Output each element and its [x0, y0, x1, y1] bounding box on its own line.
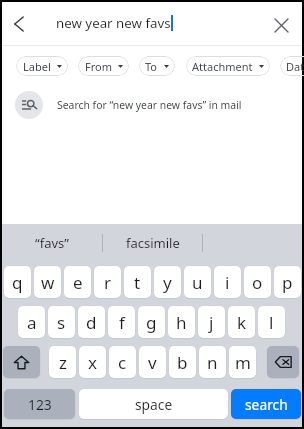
button[interactable]: Backspace — [267, 346, 299, 378]
button[interactable]: facsimile — [103, 224, 202, 262]
staticText: u — [192, 271, 203, 294]
staticText: v — [148, 351, 157, 374]
staticText: m — [235, 351, 251, 374]
staticText: o — [252, 271, 263, 294]
staticText: Attachment — [192, 59, 253, 74]
staticText: c — [118, 351, 127, 374]
staticText: y — [163, 271, 172, 294]
button[interactable]: From — [78, 56, 129, 76]
staticText: 123 — [28, 395, 52, 414]
button[interactable]: o — [244, 266, 271, 298]
button[interactable]: search — [231, 389, 301, 419]
button[interactable]: Shift — [3, 346, 40, 378]
button[interactable]: q — [4, 266, 31, 298]
staticText: facsimile — [126, 234, 180, 252]
button[interactable]: Back — [7, 12, 31, 36]
staticText: f — [119, 311, 125, 334]
button[interactable]: z — [49, 346, 76, 378]
button[interactable]: s — [48, 306, 75, 338]
button[interactable]: Date — [280, 56, 304, 76]
staticText: t — [134, 271, 141, 294]
staticText: new year new favs — [56, 14, 171, 32]
staticText: g — [146, 311, 157, 334]
button[interactable]: space — [79, 389, 228, 419]
button[interactable]: d — [78, 306, 105, 338]
staticText: s — [57, 311, 66, 334]
staticText: w — [41, 271, 55, 294]
button[interactable]: p — [274, 266, 301, 298]
staticText: h — [176, 311, 187, 334]
button[interactable]: f — [108, 306, 135, 338]
staticText: Label — [23, 59, 51, 74]
button[interactable]: h — [168, 306, 195, 338]
staticText: To — [145, 59, 158, 74]
staticText: d — [86, 311, 97, 334]
staticText: n — [207, 351, 218, 374]
staticText: a — [27, 311, 37, 334]
button[interactable]: r — [94, 266, 121, 298]
button[interactable]: v — [139, 346, 166, 378]
staticText: l — [269, 311, 274, 334]
button[interactable]: t — [124, 266, 151, 298]
button[interactable]: g — [138, 306, 165, 338]
staticText: “favs” — [35, 234, 69, 252]
staticText: Date — [286, 59, 304, 74]
button[interactable]: Attachment — [186, 56, 270, 76]
staticText: b — [177, 351, 188, 374]
button[interactable]: m — [229, 346, 256, 378]
staticText: q — [12, 271, 23, 294]
staticText: j — [209, 311, 214, 334]
button[interactable]: w — [34, 266, 61, 298]
button[interactable]: Clear search — [269, 13, 293, 37]
button[interactable]: To — [139, 56, 175, 76]
staticText: space — [135, 395, 173, 414]
staticText: From — [85, 59, 112, 74]
button[interactable]: b — [169, 346, 196, 378]
button[interactable]: x — [79, 346, 106, 378]
staticText: z — [59, 351, 67, 374]
button[interactable]: Search for “new year new favs” in mail — [2, 88, 302, 122]
button[interactable]: k — [228, 306, 255, 338]
button[interactable]: 123 — [4, 389, 75, 419]
staticText: k — [237, 311, 247, 334]
button[interactable]: u — [184, 266, 211, 298]
staticText: e — [73, 271, 83, 294]
button[interactable]: l — [258, 306, 285, 338]
staticText: r — [104, 271, 112, 294]
staticText: x — [88, 351, 97, 374]
button[interactable]: y — [154, 266, 181, 298]
button[interactable]: c — [109, 346, 136, 378]
button[interactable]: n — [199, 346, 226, 378]
staticText: p — [282, 271, 293, 294]
button[interactable]: Label — [16, 56, 68, 76]
staticText: Search for “new year new favs” in mail — [57, 98, 242, 112]
button[interactable]: j — [198, 306, 225, 338]
button[interactable]: “favs” — [2, 224, 102, 262]
button[interactable]: a — [18, 306, 45, 338]
button[interactable]: i — [214, 266, 241, 298]
button[interactable]: e — [64, 266, 91, 298]
staticText: search — [245, 395, 288, 414]
staticText: i — [225, 271, 230, 294]
